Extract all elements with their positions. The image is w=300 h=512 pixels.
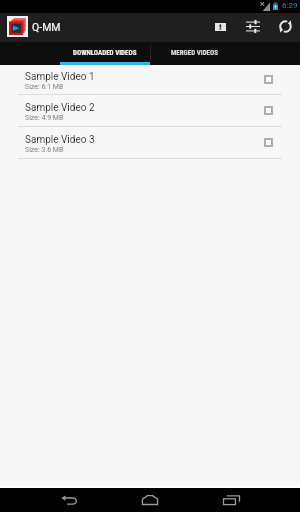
staticText: Size: 3.6 MB bbox=[25, 146, 64, 154]
button[interactable]: DOWNLOADED VIDEOS bbox=[60, 42, 150, 65]
button[interactable]: About bbox=[204, 13, 236, 42]
staticText: Size: 4.9 MB bbox=[25, 114, 64, 122]
button[interactable]: Home bbox=[128, 488, 172, 512]
staticText: Sample Video 2 bbox=[25, 102, 95, 114]
button[interactable]: Equalizer settings bbox=[237, 13, 269, 42]
staticText: Sample Video 1 bbox=[25, 71, 95, 83]
button[interactable]: Sample Video 1 bbox=[0, 65, 300, 95]
button[interactable]: Select video bbox=[264, 106, 273, 115]
staticText: MERGED VIDEOS bbox=[171, 49, 219, 57]
staticText: Q-MM bbox=[32, 21, 61, 33]
button[interactable]: Sample Video 2 bbox=[0, 95, 300, 127]
staticText: 6:29 bbox=[282, 1, 298, 10]
button[interactable]: Select video bbox=[264, 138, 273, 147]
button[interactable]: Select video bbox=[264, 75, 273, 84]
button[interactable]: Back bbox=[47, 488, 91, 512]
staticText: Size: 6.1 MB bbox=[25, 83, 64, 91]
staticText: Sample Video 3 bbox=[25, 134, 95, 146]
staticText: DOWNLOADED VIDEOS bbox=[73, 49, 137, 57]
button[interactable]: Recent apps bbox=[209, 488, 253, 512]
button[interactable]: MERGED VIDEOS bbox=[150, 42, 240, 65]
button[interactable]: Sample Video 3 bbox=[0, 127, 300, 159]
button[interactable]: Refresh bbox=[269, 13, 300, 42]
